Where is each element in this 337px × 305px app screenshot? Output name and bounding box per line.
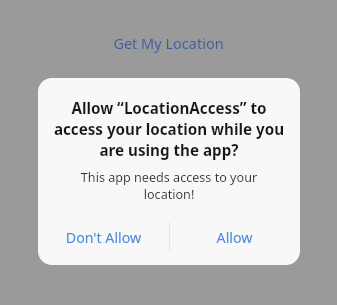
- button[interactable]: Allow: [169, 217, 300, 257]
- button[interactable]: Get My Location: [0, 30, 337, 56]
- button[interactable]: Don't Allow: [38, 217, 169, 257]
- staticText: Don't Allow: [38, 228, 169, 247]
- staticText: Allow: [169, 228, 300, 247]
- staticText: Get My Location: [6, 33, 331, 53]
- staticText: This app needs access to your location!: [64, 169, 274, 202]
- staticText: Allow “LocationAccess” to access your lo…: [52, 98, 286, 161]
